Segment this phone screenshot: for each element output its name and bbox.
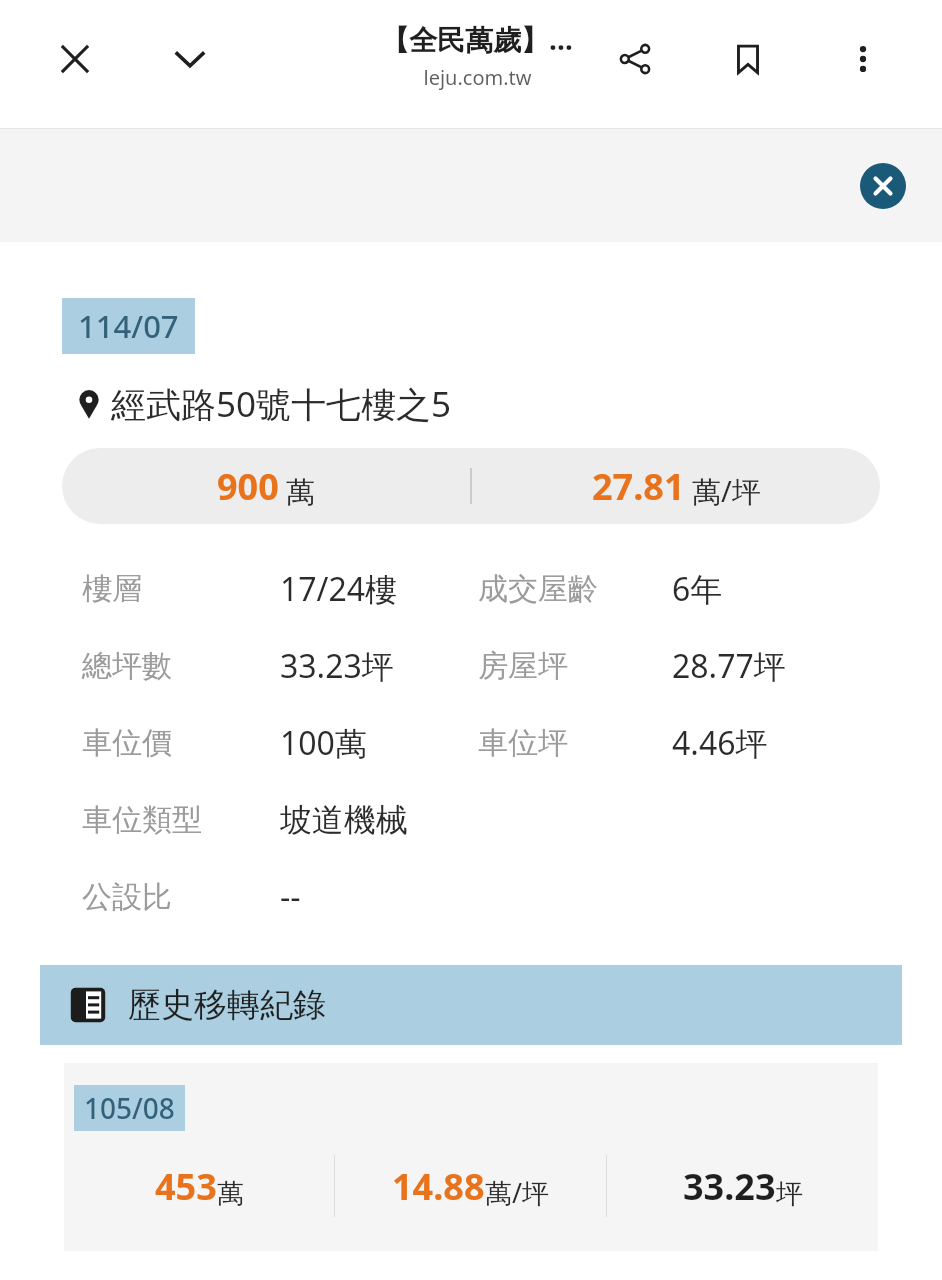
staticText: 經武路50號十七樓之5 bbox=[111, 380, 452, 428]
staticText: 114/07 bbox=[78, 305, 179, 347]
staticText: 萬/坪 bbox=[485, 1174, 550, 1211]
staticText: 27.81 bbox=[592, 462, 685, 511]
staticText: 萬/坪 bbox=[692, 471, 761, 511]
staticText: 28.77坪 bbox=[672, 644, 786, 688]
button[interactable]: 經武路50號十七樓之5 bbox=[78, 380, 942, 428]
staticText: leju.com.tw bbox=[423, 64, 532, 91]
button[interactable]: 歷史移轉紀錄 bbox=[40, 965, 902, 1045]
button[interactable]: Share bbox=[600, 24, 670, 94]
staticText: 17/24樓 bbox=[280, 567, 398, 611]
staticText: 歷史移轉紀錄 bbox=[128, 984, 326, 1026]
button[interactable]: Collapse bbox=[155, 24, 225, 94]
staticText: 6年 bbox=[672, 567, 723, 611]
staticText: 房屋坪 bbox=[478, 647, 568, 685]
button[interactable]: 總坪數 bbox=[0, 627, 942, 704]
staticText: 坡道機械 bbox=[280, 800, 408, 840]
staticText: 900 bbox=[217, 462, 279, 511]
button[interactable]: Bookmark bbox=[713, 24, 783, 94]
staticText: 坪 bbox=[776, 1177, 803, 1211]
staticText: 33.23坪 bbox=[280, 644, 394, 688]
button[interactable]: 車位類型 bbox=[0, 781, 942, 858]
button[interactable]: More options bbox=[828, 24, 898, 94]
staticText: 105/08 bbox=[84, 1089, 175, 1127]
staticText: 車位坪 bbox=[478, 724, 568, 762]
button[interactable]: 900 bbox=[62, 448, 880, 524]
staticText: 100萬 bbox=[280, 721, 367, 765]
staticText: 車位類型 bbox=[82, 801, 202, 839]
staticText: 【全民萬歲】… bbox=[381, 20, 573, 58]
button[interactable]: 車位價 bbox=[0, 704, 942, 781]
staticText: 14.88 bbox=[392, 1162, 485, 1211]
button[interactable]: 樓層 bbox=[0, 550, 942, 627]
button[interactable]: 公設比 bbox=[0, 858, 942, 935]
staticText: 總坪數 bbox=[82, 647, 172, 685]
button[interactable]: 【全民萬歲】… bbox=[312, 20, 642, 91]
button[interactable]: Close ad bbox=[860, 163, 906, 209]
button[interactable]: Close bbox=[40, 24, 110, 94]
button[interactable]: 105/08 bbox=[64, 1063, 878, 1251]
button[interactable]: 114/07 bbox=[78, 305, 179, 347]
staticText: 公設比 bbox=[82, 878, 172, 916]
staticText: 萬 bbox=[286, 474, 315, 511]
staticText: 33.23 bbox=[683, 1162, 776, 1211]
staticText: 453 bbox=[155, 1162, 217, 1211]
staticText: 車位價 bbox=[82, 724, 172, 762]
staticText: 樓層 bbox=[82, 570, 142, 608]
staticText: 萬 bbox=[217, 1177, 244, 1211]
staticText: -- bbox=[280, 875, 301, 919]
staticText: 成交屋齡 bbox=[478, 570, 598, 608]
staticText: 4.46坪 bbox=[672, 721, 768, 765]
